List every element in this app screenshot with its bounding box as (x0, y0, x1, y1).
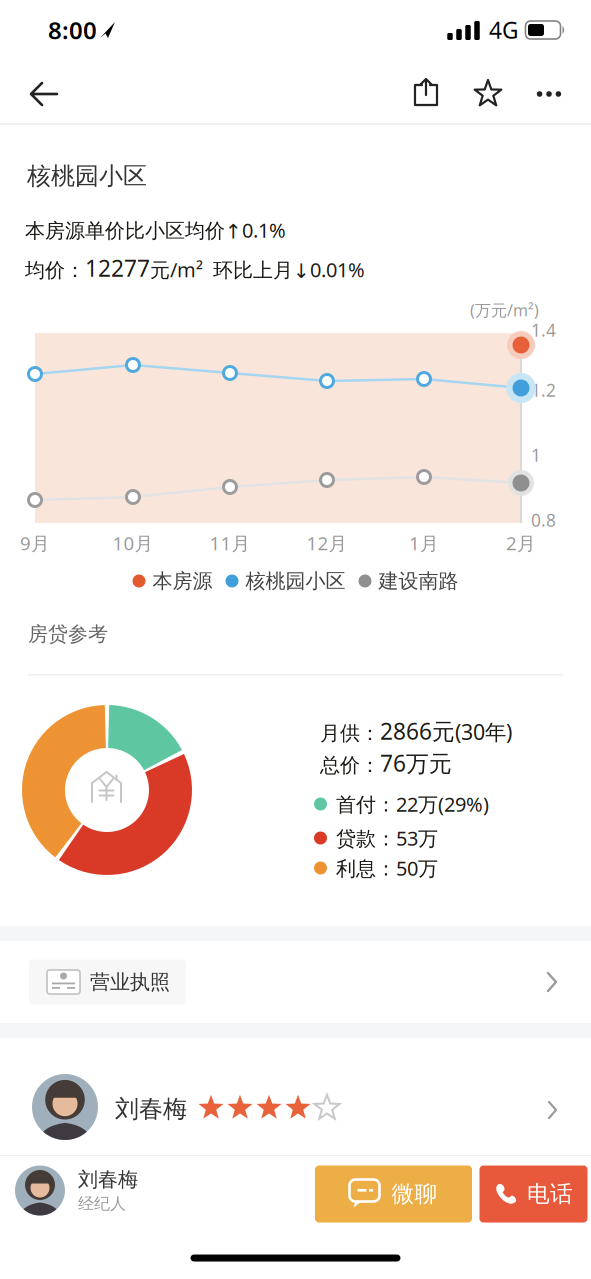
staticText: 建设南路 (378, 569, 458, 593)
staticText: 经纪人 (78, 1194, 126, 1214)
staticText: 本房源单价比小区均价↑0.1% (25, 217, 286, 243)
staticText: 4G (489, 15, 519, 45)
button[interactable]: 营业执照 (0, 941, 591, 1023)
staticText: 刘春梅 (115, 1094, 187, 1124)
staticText: 0.8 (531, 508, 556, 531)
staticText: 2月 (506, 531, 536, 555)
staticText: 核桃园小区 (245, 569, 345, 593)
button[interactable] (473, 78, 503, 108)
staticText: 1.4 (531, 318, 556, 341)
staticText: 核桃园小区 (27, 161, 147, 191)
staticText: 首付：22万(29%) (336, 791, 489, 817)
button[interactable]: 刘春梅 (0, 1157, 300, 1223)
staticText: 利息：50万 (336, 855, 438, 881)
staticText: 本房源 (152, 569, 212, 593)
staticText: 10月 (112, 531, 153, 555)
button[interactable]: 刘春梅 (0, 1038, 591, 1155)
staticText: 1月 (409, 531, 439, 555)
staticText: (万元/m²) (470, 299, 539, 321)
button[interactable]: 微聊 (315, 1165, 472, 1222)
button[interactable] (414, 78, 438, 106)
staticText: 1.2 (531, 378, 556, 401)
staticText: 12月 (306, 531, 347, 555)
button[interactable] (537, 91, 561, 97)
staticText: 营业执照 (90, 970, 170, 994)
staticText: 8:00 (48, 14, 97, 46)
staticText: 刘春梅 (78, 1167, 138, 1192)
button[interactable] (29, 80, 59, 108)
staticText: 微聊 (391, 1180, 437, 1208)
staticText: 月供：2866元(30年) (320, 716, 512, 746)
staticText: 电话 (527, 1180, 573, 1208)
staticText: 均价：12277元/m² 环比上月↓0.01% (25, 253, 365, 283)
staticText: 9月 (20, 531, 50, 555)
staticText: 1 (531, 443, 541, 466)
button[interactable]: 电话 (479, 1165, 587, 1222)
staticText: 房贷参考 (28, 622, 108, 646)
staticText: 贷款：53万 (336, 825, 438, 851)
staticText: 11月 (209, 531, 250, 555)
staticText: 总价：76万元 (320, 748, 452, 778)
